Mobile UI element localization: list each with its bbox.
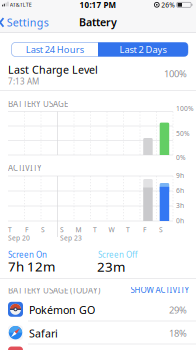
staticText: F xyxy=(143,225,146,234)
staticText: Last 24 Hours xyxy=(26,43,84,56)
staticText: Screen On xyxy=(8,249,47,260)
button[interactable]: Safari xyxy=(0,321,196,344)
staticText: Screen Off xyxy=(98,249,138,260)
staticText: BATTERY USAGE (TODAY) xyxy=(8,285,100,296)
staticText: 7h 12m xyxy=(8,257,55,275)
staticText: 50% xyxy=(176,129,190,138)
staticText: T xyxy=(8,225,12,234)
button[interactable]: Pokémon GO xyxy=(0,298,196,321)
staticText: Last Charge Level xyxy=(8,62,98,77)
staticText: Sep 20 xyxy=(8,234,30,242)
staticText: Settings xyxy=(7,15,49,29)
staticText: 7:13 AM xyxy=(8,76,39,87)
staticText: 9h xyxy=(176,171,184,180)
staticText: BATTERY USAGE xyxy=(8,99,68,109)
staticText: Pokémon GO xyxy=(29,303,95,317)
staticText: 100% xyxy=(164,67,187,80)
staticText: 0h xyxy=(176,216,184,225)
staticText: ACTIVITY xyxy=(8,163,42,173)
staticText: 10:17 PM xyxy=(79,0,116,10)
staticText: 3h xyxy=(176,201,184,210)
staticText: Sep 23 xyxy=(60,234,82,242)
staticText: F xyxy=(25,225,28,234)
staticText: Last 2 Days xyxy=(119,43,166,56)
staticText: 0% xyxy=(176,153,186,162)
button[interactable]: Back xyxy=(0,13,49,31)
staticText: 6h xyxy=(176,186,184,195)
staticText: T xyxy=(126,225,130,234)
staticText: SHOW ACTIVITY xyxy=(130,285,189,295)
staticText: S xyxy=(60,225,64,234)
staticText: W xyxy=(108,225,114,234)
staticText: M xyxy=(75,225,81,234)
staticText: T xyxy=(93,225,97,234)
staticText: AT&T xyxy=(10,1,23,8)
staticText: 29% xyxy=(169,304,187,316)
staticText: LTE xyxy=(23,1,32,8)
staticText: 26% xyxy=(161,0,175,9)
staticText: Battery xyxy=(79,15,117,29)
button[interactable]: SHOW ACTIVITY xyxy=(127,285,189,295)
staticText: 100% xyxy=(176,104,194,113)
button[interactable]: Last 24 Hours xyxy=(11,42,98,56)
button[interactable]: Last 2 Days xyxy=(98,42,188,56)
staticText: S xyxy=(159,225,163,234)
staticText: 23m xyxy=(97,258,125,275)
staticText: 18% xyxy=(169,327,187,339)
staticText: S xyxy=(41,225,45,234)
staticText: Safari xyxy=(29,326,58,340)
